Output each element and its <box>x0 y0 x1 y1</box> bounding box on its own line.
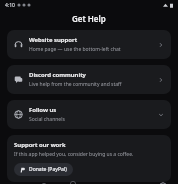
staticText: 4:10 <box>5 2 15 9</box>
staticText: Social channels <box>29 116 65 123</box>
button[interactable]: Follow us <box>7 100 171 129</box>
staticText: Discord community <box>29 71 86 79</box>
staticText: Get Help <box>72 13 106 24</box>
staticText: Donate (PayPal) <box>29 166 67 173</box>
button[interactable]: Website support <box>7 30 171 59</box>
staticText: If this app helped you, consider buying … <box>14 151 134 158</box>
staticText: Live help from the community and staff <box>29 81 122 88</box>
staticText: Home page — use the bottom-left chat <box>29 46 121 53</box>
staticText: Follow us <box>29 106 57 114</box>
button[interactable]: Donate (PayPal) <box>14 163 73 176</box>
staticText: Support our work <box>14 141 66 149</box>
staticText: Website support <box>29 36 78 44</box>
button[interactable]: Discord community <box>7 65 171 94</box>
